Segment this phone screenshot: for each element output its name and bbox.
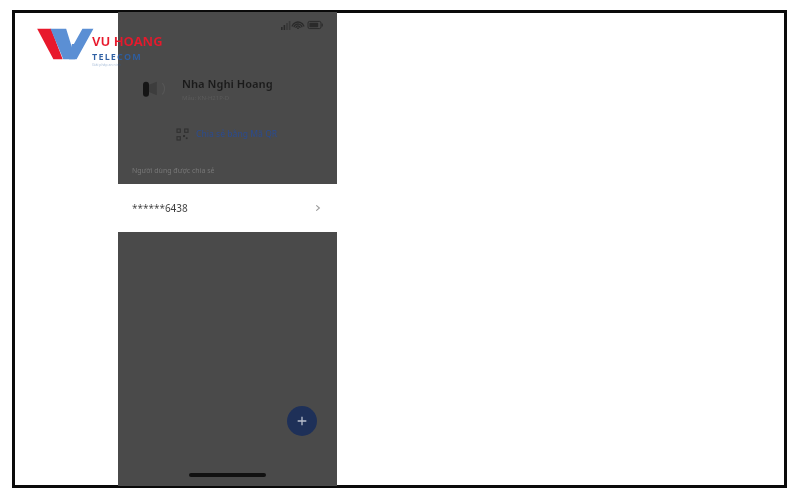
- button[interactable]: Nha Nghi Hoang: [118, 76, 337, 102]
- staticText: VU HOANG: [92, 32, 163, 50]
- staticText: Mẫu: KN-H21P-D: [182, 94, 230, 102]
- button[interactable]: ******6438: [118, 184, 337, 232]
- staticText: Nha Nghi Hoang: [182, 76, 273, 91]
- button[interactable]: Thêm: [287, 406, 317, 436]
- staticText: ******6438: [132, 201, 188, 215]
- staticText: TELECOM: [92, 50, 142, 62]
- staticText: Giải pháp an ninh: [92, 62, 121, 67]
- button[interactable]: Chia sẻ bằng Mã QR: [118, 123, 337, 145]
- staticText: Chia sẻ bằng Mã QR: [196, 128, 278, 140]
- staticText: Người dùng được chia sẻ: [132, 166, 215, 176]
